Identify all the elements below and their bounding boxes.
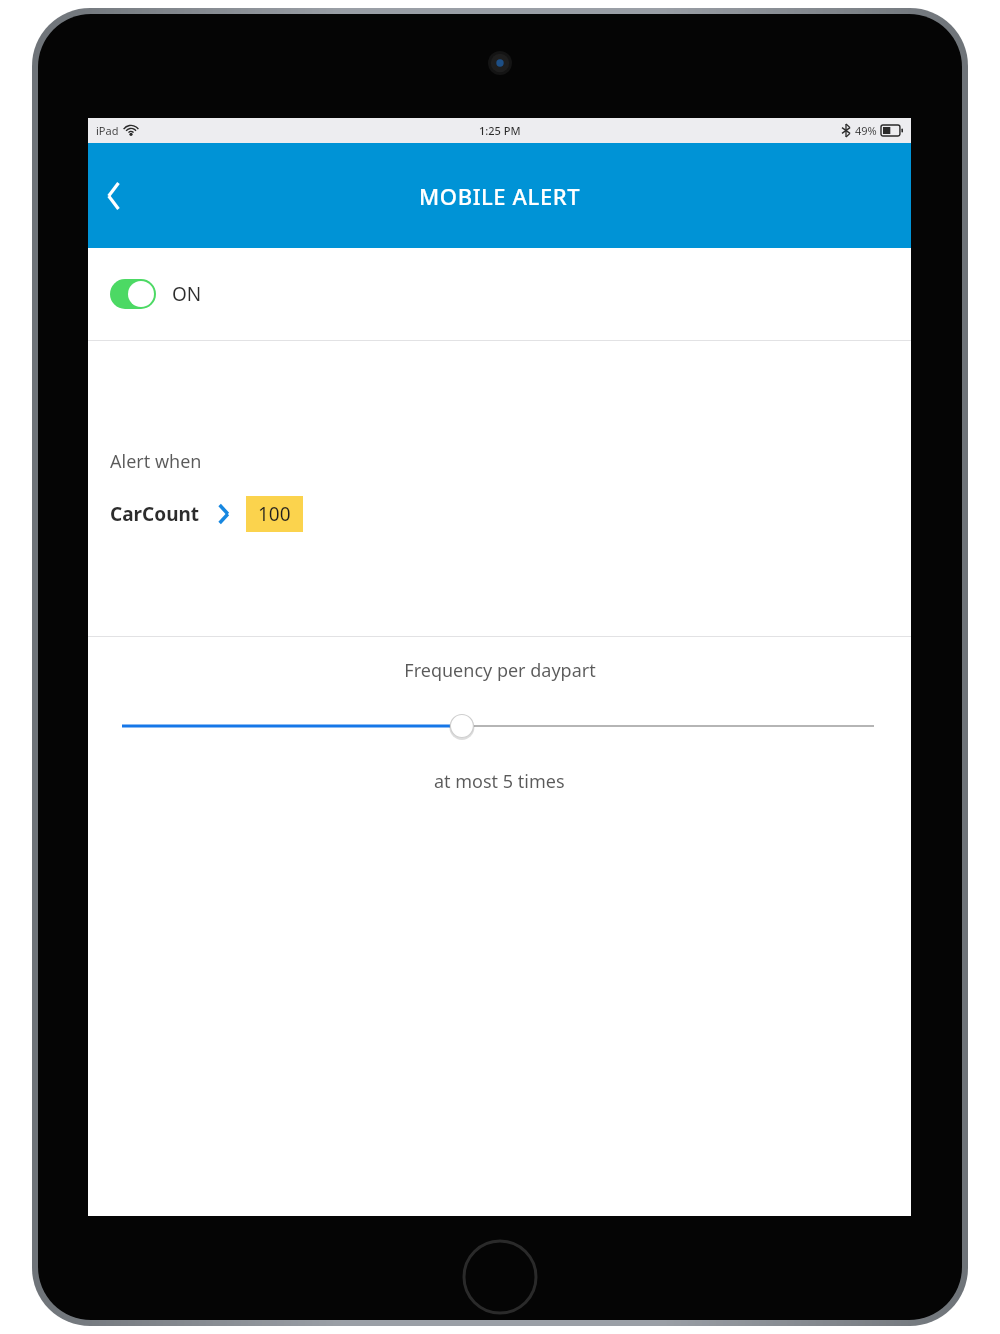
button[interactable]: ON	[88, 248, 911, 340]
button[interactable]: Comparison operator greater than	[200, 497, 246, 531]
staticText: at most 5 times	[434, 769, 565, 794]
staticText: 100	[258, 501, 291, 527]
button[interactable]: Back	[90, 172, 138, 220]
staticText: CarCount	[110, 501, 200, 527]
staticText: Alert when	[110, 449, 202, 474]
staticText: ON	[172, 281, 202, 307]
button[interactable]: 100	[246, 496, 303, 532]
staticText: MOBILE ALERT	[419, 181, 581, 211]
button[interactable]: Frequency slider	[88, 709, 911, 743]
staticText: 49%	[855, 123, 877, 138]
staticText: iPad	[96, 123, 119, 138]
staticText: 1:25 PM	[479, 123, 521, 138]
staticText: Frequency per daypart	[404, 658, 596, 683]
